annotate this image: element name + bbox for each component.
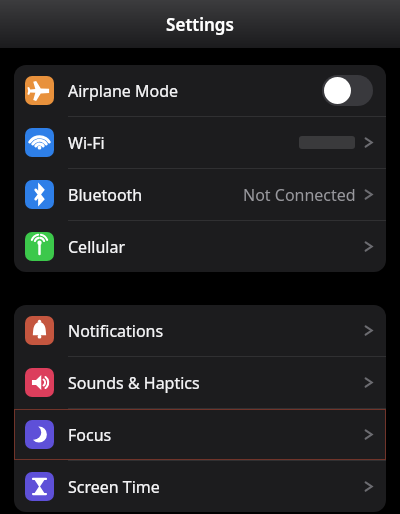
button[interactable]: Cellular <box>14 221 386 272</box>
button[interactable]: Airplane Mode <box>14 65 386 116</box>
staticText: Airplane Mode <box>68 80 179 102</box>
staticText: Not Connected <box>243 184 356 206</box>
button[interactable]: Notifications <box>14 305 386 356</box>
button[interactable]: Screen Time <box>14 461 386 512</box>
button[interactable]: Sounds & Haptics <box>14 357 386 408</box>
staticText: Sounds & Haptics <box>68 372 200 394</box>
button[interactable]: Focus <box>14 409 386 460</box>
staticText: Notifications <box>68 320 164 342</box>
button[interactable]: Wi-Fi <box>14 117 386 168</box>
staticText: Settings <box>166 13 234 36</box>
staticText: Cellular <box>68 236 125 258</box>
button[interactable]: Bluetooth <box>14 169 386 220</box>
staticText: Screen Time <box>68 476 160 498</box>
staticText: Wi-Fi <box>68 132 105 154</box>
button[interactable]: Airplane Mode toggle <box>322 75 373 106</box>
staticText: Bluetooth <box>68 184 143 206</box>
staticText: Focus <box>68 424 112 446</box>
